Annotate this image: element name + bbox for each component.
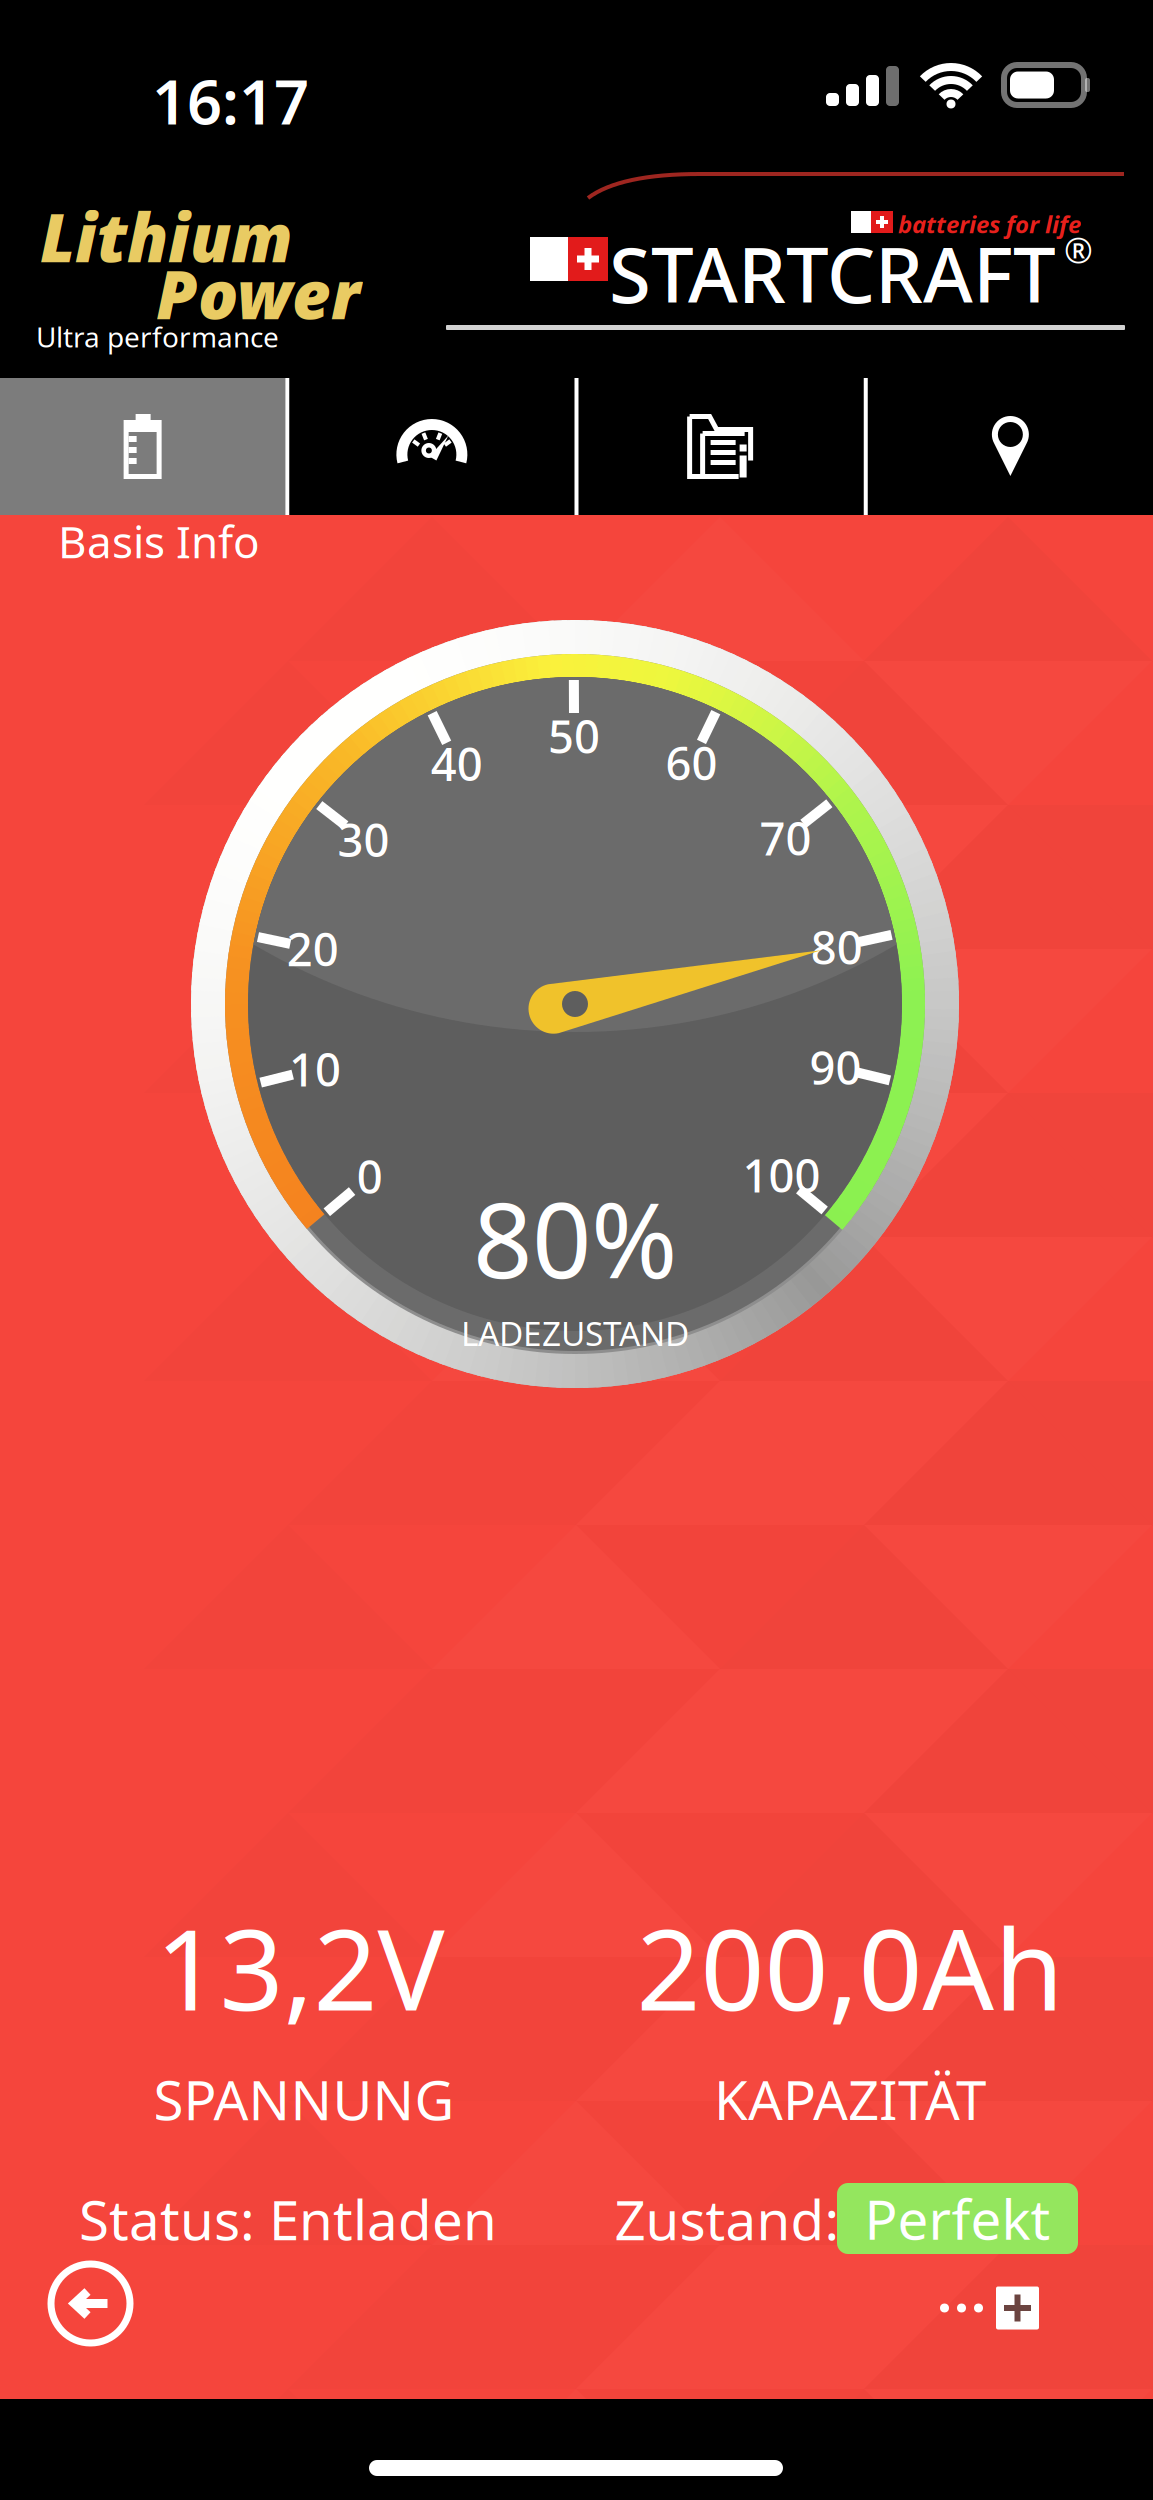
- button[interactable]: Basis Info: [0, 378, 285, 515]
- button[interactable]: Details: [578, 378, 864, 515]
- staticText: 10: [289, 1039, 341, 1099]
- button[interactable]: Perfekt: [837, 2183, 1078, 2254]
- staticText: Ultra performance: [36, 318, 279, 355]
- staticText: Zustand:: [614, 2183, 839, 2255]
- staticText: 90: [809, 1037, 861, 1097]
- staticText: LADEZUSTAND: [461, 1311, 689, 1355]
- staticText: Status: Entladen: [79, 2183, 497, 2255]
- staticText: 80: [811, 917, 863, 977]
- staticText: SPANNUNG: [153, 2063, 454, 2135]
- staticText: 30: [337, 809, 389, 869]
- button[interactable]: Standort: [868, 378, 1153, 515]
- button[interactable]: Back: [51, 2264, 130, 2343]
- staticText: STARTCRAFT: [609, 223, 1056, 324]
- staticText: Perfekt: [864, 2182, 1050, 2255]
- button[interactable]: More: [940, 2286, 1039, 2330]
- staticText: KAPAZITÄT: [714, 2063, 986, 2135]
- staticText: Power: [156, 249, 360, 337]
- staticText: 80%: [473, 1169, 677, 1307]
- staticText: 0: [357, 1146, 383, 1206]
- staticText: 13,2V: [155, 1893, 444, 2041]
- staticText: 40: [431, 733, 483, 794]
- staticText: Lithium: [40, 192, 293, 280]
- staticText: 60: [665, 732, 717, 793]
- staticText: batteries for life: [898, 208, 1081, 240]
- staticText: 16:17: [152, 60, 309, 141]
- staticText: 200,0Ah: [636, 1893, 1063, 2041]
- staticText: 50: [548, 706, 600, 766]
- staticText: 20: [287, 918, 339, 979]
- button[interactable]: Messwerte: [289, 378, 574, 515]
- staticText: 70: [759, 808, 811, 868]
- staticText: 100: [742, 1145, 820, 1205]
- staticText: Basis Info: [58, 512, 260, 570]
- staticText: ®: [1064, 227, 1093, 273]
